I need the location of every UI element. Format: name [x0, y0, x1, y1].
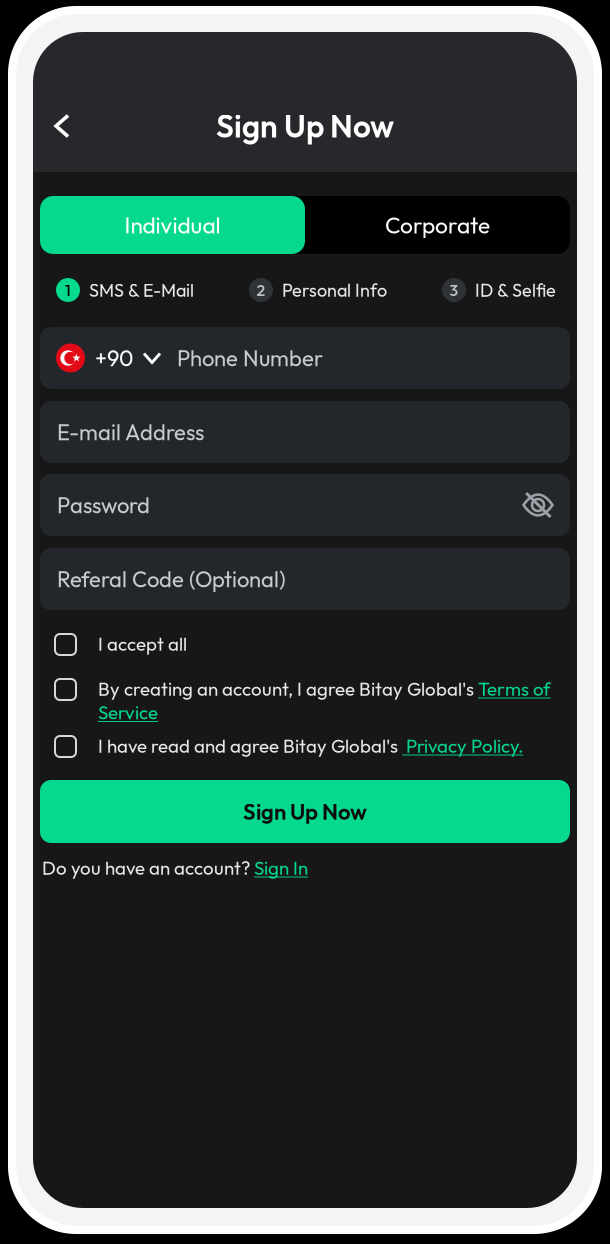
staticText: I have read and agree Bitay Global's Pri… [98, 734, 523, 757]
staticText: Personal Info [282, 279, 387, 301]
staticText: Sign In [254, 856, 308, 879]
button[interactable]: By creating an account, I agree Bitay Gl… [40, 679, 570, 700]
button[interactable]: I accept all [40, 634, 570, 655]
staticText: E-mail Address [57, 418, 204, 446]
staticText: Sign Up Now [243, 798, 367, 825]
button[interactable]: Sign Up Now [40, 780, 570, 843]
button[interactable]: Sign In [254, 856, 308, 879]
staticText: Password [57, 491, 150, 519]
button[interactable]: Individual [40, 196, 305, 254]
button[interactable]: Show password [522, 492, 570, 518]
button[interactable]: Back [38, 102, 86, 150]
staticText: 3 [449, 280, 458, 300]
staticText: I accept all [98, 632, 187, 655]
staticText: +90 [95, 344, 133, 372]
staticText: Corporate [385, 211, 490, 239]
staticText: ID & Selfie [475, 279, 556, 301]
staticText: Referal Code (Optional) [57, 565, 286, 593]
staticText: Sign Up Now [216, 106, 394, 146]
staticText: By creating an account, I agree Bitay Gl… [98, 677, 550, 724]
button[interactable]: Corporate [305, 196, 570, 254]
staticText: 1 [65, 280, 71, 300]
button[interactable]: I have read and agree Bitay Global's Pri… [40, 736, 570, 757]
staticText: Do you have an account? [42, 856, 254, 879]
staticText: Phone Number [177, 344, 323, 372]
staticText: Individual [124, 211, 220, 239]
staticText: SMS & E-Mail [89, 279, 194, 301]
staticText: 2 [256, 280, 265, 300]
